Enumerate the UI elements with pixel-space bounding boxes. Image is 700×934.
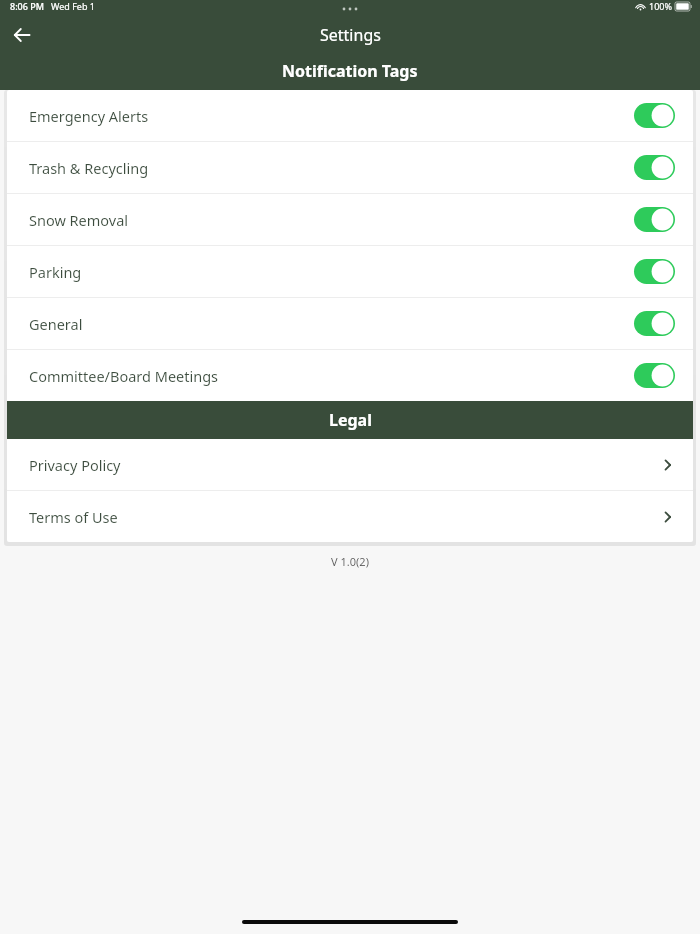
button[interactable]: Snow Removal xyxy=(7,194,693,245)
staticText: Notification Tags xyxy=(282,60,418,82)
button[interactable]: Terms of Use xyxy=(7,491,693,542)
button[interactable]: Emergency Alerts xyxy=(7,90,693,141)
staticText: Trash & Recycling xyxy=(29,158,149,178)
button[interactable]: Toggle on xyxy=(634,311,675,336)
staticText: Terms of Use xyxy=(29,507,118,527)
button[interactable]: Toggle on xyxy=(634,207,675,232)
staticText: Snow Removal xyxy=(29,210,129,230)
staticText: General xyxy=(29,314,83,334)
button[interactable]: Toggle on xyxy=(634,363,675,388)
button[interactable]: Toggle on xyxy=(634,259,675,284)
staticText: Settings xyxy=(320,24,381,46)
staticText: 100% xyxy=(649,0,672,12)
button[interactable]: Privacy Policy xyxy=(7,439,693,490)
button[interactable]: Toggle on xyxy=(634,155,675,180)
staticText: Privacy Policy xyxy=(29,455,121,475)
staticText: Wed Feb 1 xyxy=(51,0,95,12)
staticText: Parking xyxy=(29,262,82,282)
staticText: Committee/Board Meetings xyxy=(29,366,219,386)
staticText: Emergency Alerts xyxy=(29,106,149,126)
button[interactable]: Toggle on xyxy=(634,103,675,128)
staticText: V 1.0(2) xyxy=(331,554,369,569)
button[interactable]: Committee/Board Meetings xyxy=(7,350,693,401)
button[interactable]: Back xyxy=(0,18,44,52)
staticText: Legal xyxy=(329,409,372,431)
button[interactable]: Trash & Recycling xyxy=(7,142,693,193)
button[interactable]: Parking xyxy=(7,246,693,297)
button[interactable]: General xyxy=(7,298,693,349)
staticText: 8:06 PM xyxy=(10,0,44,12)
